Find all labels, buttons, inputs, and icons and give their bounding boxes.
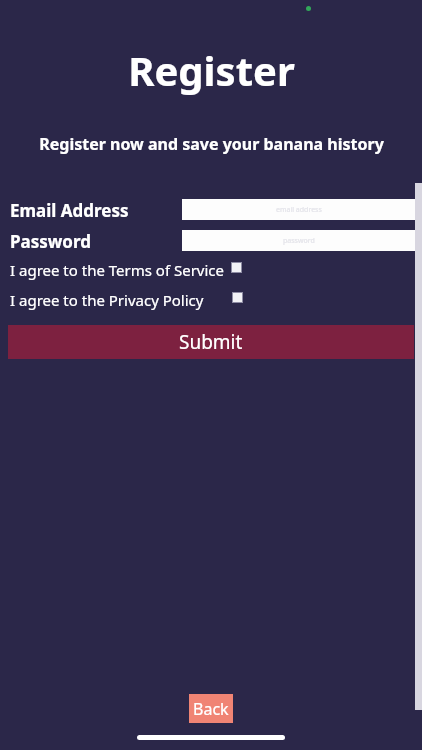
other: Agree checkbox xyxy=(231,262,242,273)
button[interactable]: Submit xyxy=(8,325,414,359)
staticText: I agree to the Privacy Policy xyxy=(10,290,204,310)
staticText: Back xyxy=(193,698,229,720)
other: Agree checkbox xyxy=(232,292,243,303)
staticText: Email Address xyxy=(10,199,129,222)
staticText: Register xyxy=(128,43,295,97)
staticText: Register now and save your banana histor… xyxy=(39,133,384,155)
staticText: email address xyxy=(276,205,322,215)
button[interactable]: I agree to the Privacy Policy xyxy=(0,289,422,309)
button[interactable]: I agree to the Terms of Service xyxy=(0,259,422,279)
staticText: Submit xyxy=(179,329,243,355)
staticText: Password xyxy=(10,230,91,253)
button[interactable]: Back xyxy=(189,694,233,723)
staticText: I agree to the Terms of Service xyxy=(10,260,225,280)
staticText: password xyxy=(283,236,315,246)
